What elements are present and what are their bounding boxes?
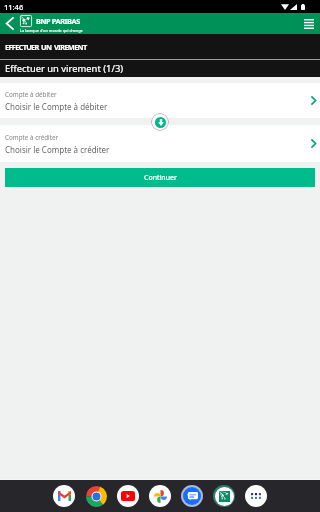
staticText: BNP PARIBAS xyxy=(36,16,80,26)
staticText: Compte à créditer xyxy=(5,133,59,142)
staticText: UN xyxy=(41,42,52,52)
button[interactable]: All apps xyxy=(245,485,267,507)
staticText: Continuer xyxy=(144,173,177,183)
button[interactable]: Compte à débiter xyxy=(0,83,320,118)
button[interactable]: Continuer xyxy=(5,168,315,187)
button[interactable]: Menu xyxy=(298,13,320,34)
staticText: VIREMENT xyxy=(54,42,87,52)
button[interactable]: Chrome xyxy=(85,485,107,507)
button[interactable]: Photos xyxy=(149,485,171,507)
button[interactable]: Mes Comptes BNP Paribas xyxy=(213,485,235,507)
staticText: EFFECTUER xyxy=(5,42,39,52)
staticText: Choisir le Compte à créditer xyxy=(5,144,110,155)
button[interactable]: Back xyxy=(0,13,19,34)
staticText: La banque d'un monde qui change xyxy=(20,28,83,33)
button[interactable]: YouTube xyxy=(117,485,139,507)
staticText: 11:46 xyxy=(4,2,24,12)
button[interactable]: Swap accounts xyxy=(151,113,169,131)
staticText: Compte à débiter xyxy=(5,90,57,99)
button[interactable]: Compte à créditer xyxy=(0,125,320,162)
staticText: Effectuer un virement (1/3) xyxy=(5,62,124,75)
button[interactable]: Messages xyxy=(181,485,203,507)
staticText: Choisir le Compte à débiter xyxy=(5,101,108,112)
button[interactable]: Gmail xyxy=(53,485,75,507)
